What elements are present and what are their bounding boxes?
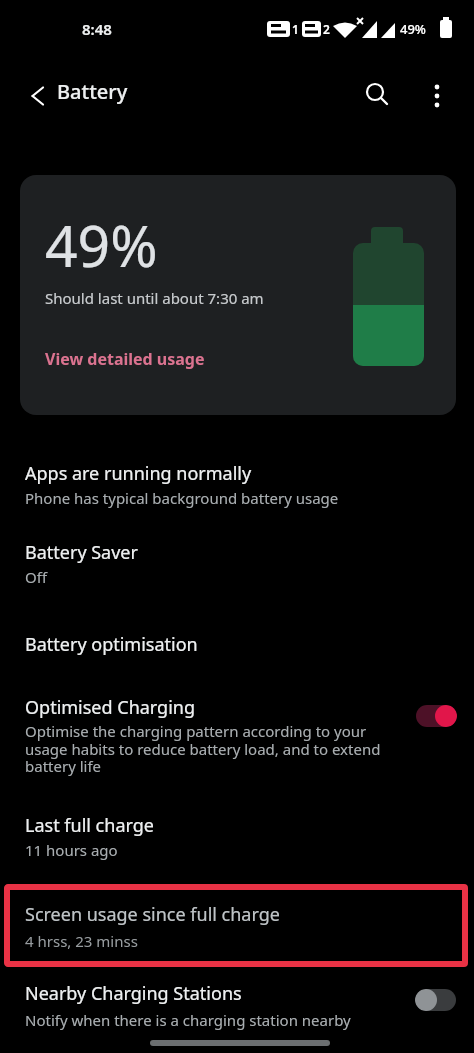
staticText: Nearby Charging Stations (25, 981, 242, 1006)
button[interactable]: Optimised Charging (0, 695, 474, 776)
button[interactable]: Battery optimisation (0, 632, 474, 657)
staticText: 11 hours ago (25, 840, 118, 860)
button[interactable] (417, 72, 457, 112)
staticText: 4 hrss, 23 minss (25, 931, 138, 951)
button[interactable]: Last full charge (0, 813, 474, 860)
staticText: 1 (292, 21, 299, 37)
button[interactable]: Battery (20, 56, 180, 126)
button[interactable]: Screen usage since full charge (4, 884, 468, 967)
staticText: Off (25, 567, 48, 587)
staticText: 49% (400, 20, 426, 38)
staticText: Battery Saver (25, 540, 138, 565)
button[interactable] (416, 705, 457, 727)
staticText: 49% (45, 206, 158, 284)
staticText: Battery optimisation (25, 632, 198, 657)
button[interactable]: Apps are running normally (0, 461, 474, 508)
button[interactable]: Nearby Charging Stations (0, 981, 474, 1030)
staticText: Should last until about 7:30 am (45, 288, 264, 308)
staticText: Last full charge (25, 813, 154, 838)
staticText: 2 (323, 21, 330, 37)
button[interactable] (355, 72, 395, 112)
button[interactable]: View detailed usage (45, 348, 205, 370)
staticText: Phone has typical background battery usa… (25, 488, 339, 508)
staticText: 8:48 (82, 19, 112, 39)
button[interactable]: 49% (20, 175, 456, 415)
button[interactable]: Battery Saver (0, 540, 474, 587)
staticText: Battery (57, 78, 128, 105)
staticText: Apps are running normally (25, 461, 252, 486)
staticText: Screen usage since full charge (25, 902, 280, 927)
staticText: Notify when there is a charging station … (25, 1010, 351, 1030)
staticText: Optimise the charging pattern according … (25, 721, 381, 776)
staticText: Optimised Charging (25, 695, 196, 720)
button[interactable] (415, 989, 456, 1011)
